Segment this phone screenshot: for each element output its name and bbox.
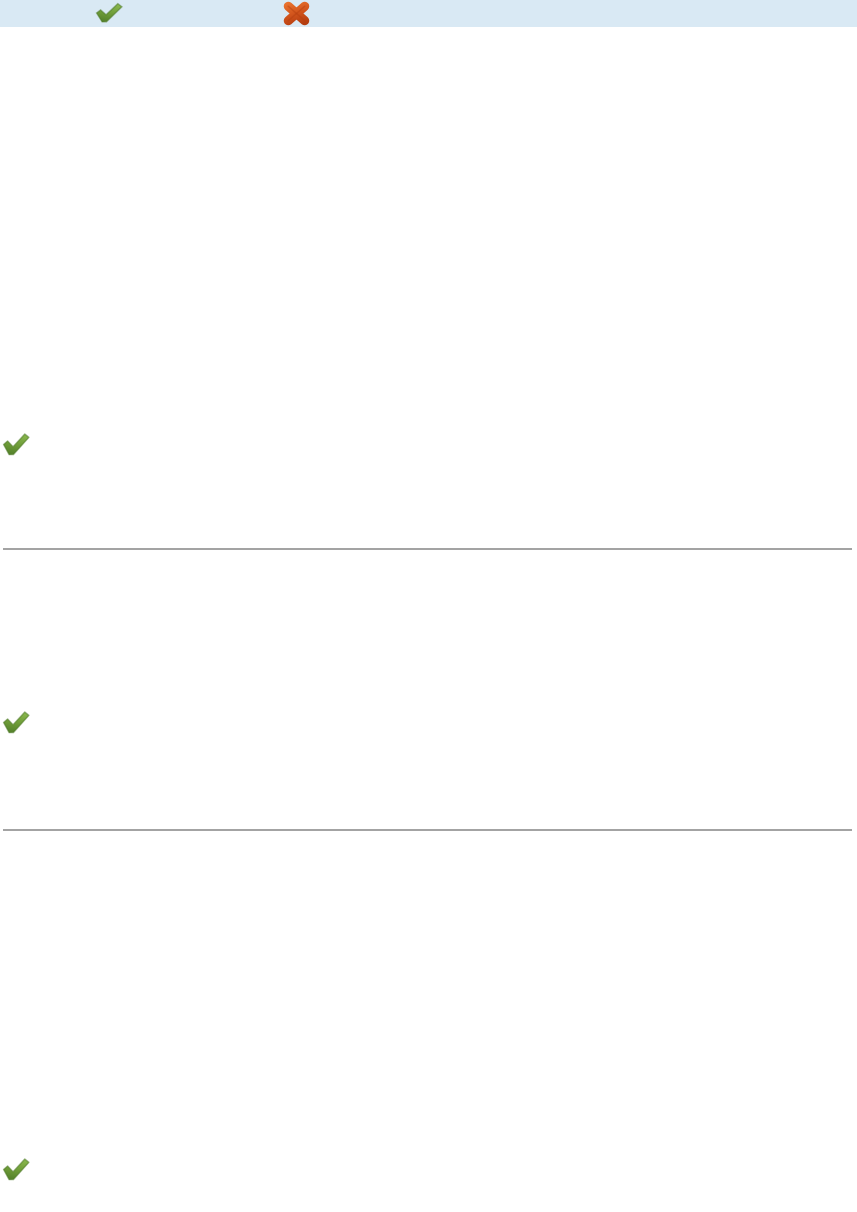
button[interactable]: Checked [2,432,30,457]
button[interactable]: Checked [2,1157,30,1182]
button[interactable]: Reject [284,2,309,25]
button[interactable]: Accept [95,2,123,24]
button[interactable]: Checked [2,710,30,735]
